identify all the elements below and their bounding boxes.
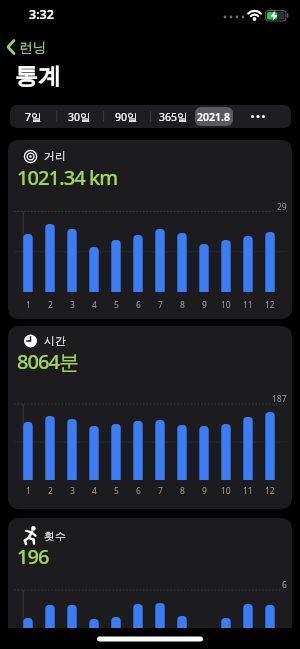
staticText: 6 [282,579,287,590]
button[interactable] [150,105,197,128]
staticText: 196 [17,543,49,570]
staticText: 1 [26,485,31,497]
staticText: 90일 [115,110,138,124]
staticText: 4 [92,299,97,311]
staticText: 8 [180,299,185,311]
staticText: 2 [48,299,53,311]
button[interactable] [197,105,244,128]
staticText: 5 [114,299,119,311]
button[interactable] [195,107,233,126]
staticText: 4 [92,485,97,497]
staticText: 30일 [68,110,91,124]
button[interactable] [8,326,292,509]
staticText: 3 [70,299,75,311]
staticText: 9 [202,299,207,311]
staticText: 시간 [44,334,66,348]
staticText: 7 [158,485,163,497]
staticText: 8 [180,485,185,497]
staticText: 187 [272,393,287,404]
staticText: 365일 [159,110,188,124]
staticText: 29 [277,201,287,212]
staticText: 통계 [15,62,61,91]
staticText: 거리 [44,149,66,163]
staticText: 2021.8 [197,110,230,124]
staticText: 12 [265,299,275,311]
staticText: 11 [243,299,253,311]
staticText: 11 [243,485,253,497]
staticText: 5 [114,485,119,497]
button[interactable] [104,105,151,128]
staticText: 8064분 [17,348,79,375]
staticText: 런닝 [19,39,46,56]
button[interactable] [57,105,104,128]
staticText: 3 [70,485,75,497]
staticText: 1021.34 km [17,164,118,191]
button[interactable] [2,36,62,58]
staticText: 10 [221,485,231,497]
staticText: 횟수 [44,529,66,543]
button[interactable] [244,105,291,128]
button[interactable] [8,518,292,649]
staticText: 7 [158,299,163,311]
staticText: 2 [48,485,53,497]
staticText: 7일 [25,110,42,124]
staticText: 6 [136,299,141,311]
staticText: 10 [221,299,231,311]
staticText: 1 [26,299,31,311]
button[interactable] [8,140,292,319]
staticText: 6 [136,485,141,497]
staticText: 3:32 [29,6,54,22]
staticText: 12 [265,485,275,497]
staticText: 9 [202,485,207,497]
button[interactable] [10,105,57,128]
